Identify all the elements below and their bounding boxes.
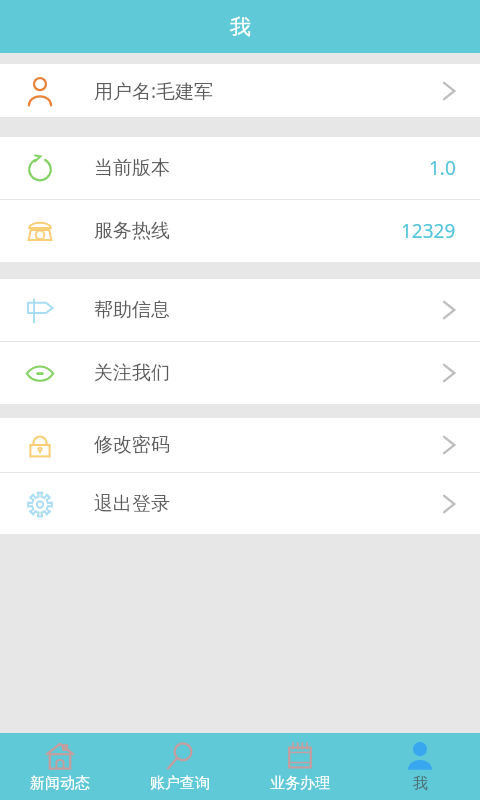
staticText: 我 [230, 14, 251, 40]
button[interactable]: Log out [0, 473, 480, 534]
staticText: 新闻动态 [30, 774, 90, 793]
staticText: 用户名:毛建军 [94, 78, 214, 104]
other: Help information [25, 295, 55, 325]
other: Business services [285, 741, 315, 771]
other: News [45, 741, 75, 771]
button[interactable]: User [0, 64, 480, 117]
staticText: 关注我们 [94, 361, 170, 385]
button[interactable]: Help information [0, 279, 480, 341]
staticText: 帮助信息 [94, 298, 170, 322]
staticText: 我 [413, 774, 428, 793]
staticText: 12329 [401, 218, 456, 244]
button[interactable]: Current version [0, 137, 480, 199]
staticText: 服务热线 [94, 219, 170, 243]
button[interactable]: News [0, 733, 120, 800]
staticText: 退出登录 [94, 492, 170, 516]
other: Log out [25, 489, 55, 519]
other: Follow us [25, 358, 55, 388]
staticText: 业务办理 [270, 774, 330, 793]
button[interactable]: Service hotline [0, 200, 480, 262]
other: Profile [405, 741, 435, 771]
other: Current version [25, 153, 55, 183]
button[interactable]: Profile [360, 733, 480, 800]
staticText: 修改密码 [94, 433, 170, 457]
other: Change password [25, 430, 55, 460]
button[interactable]: Follow us [0, 342, 480, 404]
button[interactable]: Business services [240, 733, 360, 800]
other: User [25, 76, 55, 106]
staticText: 1.0 [429, 155, 456, 181]
button[interactable]: Account inquiry [120, 733, 240, 800]
other: Account inquiry [165, 741, 195, 771]
button[interactable]: Change password [0, 418, 480, 472]
other: Service hotline [25, 216, 55, 246]
staticText: 账户查询 [150, 774, 210, 793]
staticText: 当前版本 [94, 156, 170, 180]
